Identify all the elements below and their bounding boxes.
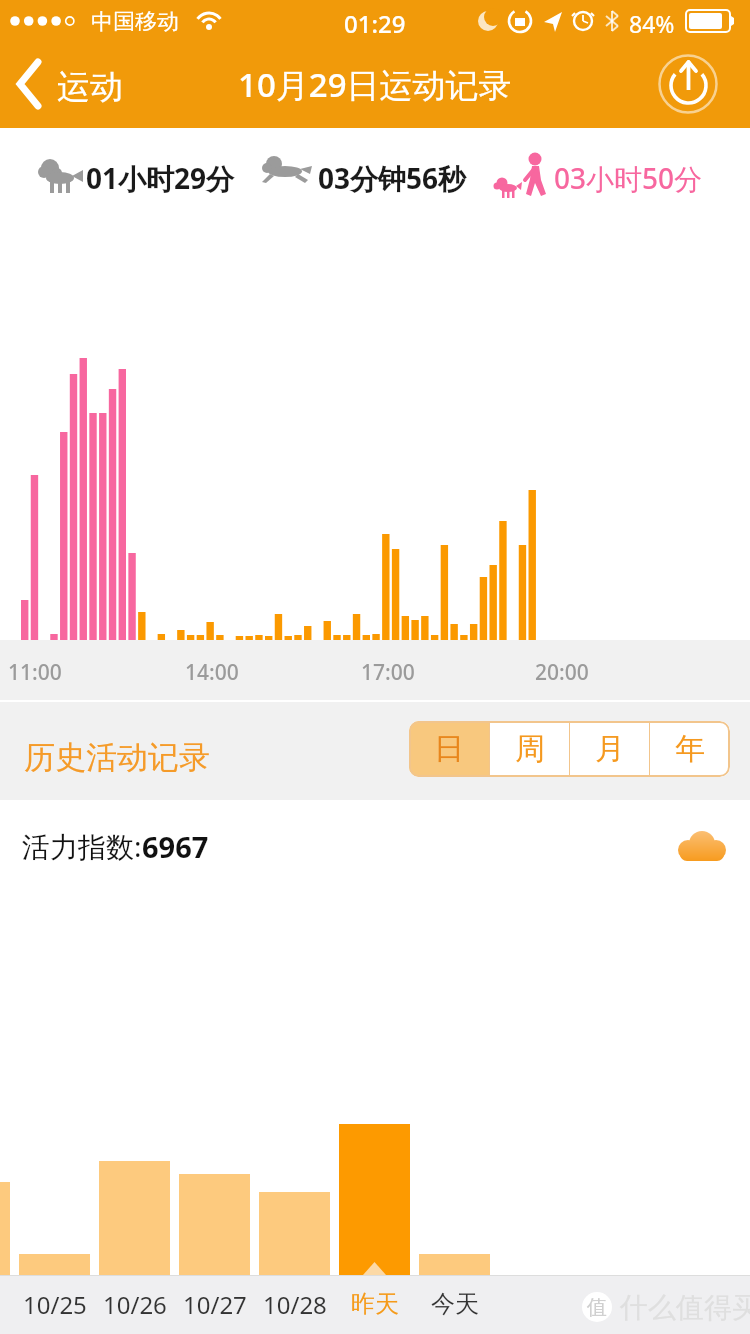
button[interactable]: 10/28 (255, 1286, 335, 1322)
staticText: 84% (629, 8, 675, 36)
staticText: 运动 (57, 66, 123, 106)
staticText: 17:00 (361, 658, 415, 687)
button[interactable]: 10/25 (15, 1286, 95, 1322)
staticText: 中国移动 (91, 8, 179, 36)
staticText: 什么值得买 (620, 1290, 740, 1324)
staticText: 10/25 (23, 1288, 87, 1321)
button[interactable]: 10/26 (95, 1286, 175, 1322)
staticText: 今天 (431, 1289, 479, 1319)
staticText: 03分钟56秒 (318, 159, 467, 197)
button[interactable]: 10/27 (175, 1286, 255, 1322)
staticText: 月 (595, 730, 625, 768)
staticText: 值 (587, 1295, 607, 1320)
button[interactable]: 运动 (6, 48, 146, 120)
staticText: 01:29 (344, 7, 406, 37)
button[interactable]: 昨天 (335, 1286, 415, 1322)
button[interactable] (658, 54, 718, 114)
staticText: 01小时29分 (86, 159, 235, 197)
staticText: 20:00 (535, 658, 589, 687)
staticText: 周 (515, 730, 545, 768)
staticText: 昨天 (351, 1289, 399, 1319)
staticText: 活力指数: (22, 827, 142, 865)
staticText: 10/26 (103, 1288, 167, 1321)
staticText: 历史活动记录 (24, 738, 210, 777)
staticText: 10/28 (263, 1288, 327, 1321)
button[interactable]: 周 (490, 721, 569, 777)
staticText: 10/27 (183, 1288, 247, 1321)
staticText: 日 (434, 730, 464, 768)
button[interactable]: 今天 (415, 1286, 495, 1322)
button[interactable]: 月 (570, 721, 649, 777)
staticText: 6967 (142, 827, 209, 866)
staticText: 年 (675, 730, 705, 768)
staticText: 14:00 (185, 658, 239, 687)
button[interactable]: 日 (409, 721, 489, 777)
staticText: 03小时50分 (554, 159, 703, 197)
button[interactable]: 年 (650, 721, 729, 777)
staticText: 11:00 (8, 658, 62, 687)
staticText: 10月29日运动记录 (238, 62, 512, 106)
